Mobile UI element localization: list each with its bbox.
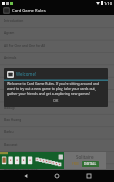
button[interactable]: Basra: [0, 151, 114, 163]
staticText: Asshole: [4, 80, 17, 84]
button[interactable]: Back: [20, 170, 32, 182]
staticText: Card Game Rules: [12, 8, 46, 14]
button[interactable]: App icon: [3, 7, 10, 14]
button[interactable]: Badugi: [0, 102, 114, 114]
button[interactable]: Home: [51, 170, 63, 182]
button[interactable]: All For One and One for All: [0, 40, 114, 52]
staticText: Baccarat: [4, 142, 18, 146]
staticText: Animals: [4, 55, 17, 59]
staticText: 1:10: [104, 1, 112, 6]
staticText: Welcome to Card Game Rules. If you're si…: [7, 81, 105, 96]
staticText: FREE: [72, 162, 79, 166]
button[interactable]: Anaconda: [0, 64, 114, 76]
staticText: Introduction: [4, 18, 24, 22]
staticText: Agram: [4, 30, 15, 34]
staticText: OK: [53, 98, 59, 103]
button[interactable]: OK: [47, 97, 65, 104]
staticText: Beggar-My-Neighbour: [4, 166, 39, 170]
staticText: Anaconda: [4, 67, 20, 71]
staticText: INSTALL: [84, 162, 97, 166]
staticText: Welcome!: [16, 71, 37, 77]
staticText: Basra: [4, 154, 13, 158]
staticText: Australian Fish: [4, 92, 27, 96]
staticText: Badugi: [4, 105, 15, 109]
staticText: Solitaire: [76, 154, 94, 160]
button[interactable]: Australian Fish: [0, 89, 114, 101]
button[interactable]: Beggar-My-Neighbour: [0, 163, 114, 175]
staticText: Barbu: [4, 129, 14, 133]
staticText: Bao Huang: [4, 117, 22, 121]
staticText: All For One and One for All: [4, 43, 46, 47]
button[interactable]: Asshole: [0, 77, 114, 89]
button[interactable]: INSTALL: [82, 161, 99, 167]
button[interactable]: Recents: [83, 170, 95, 182]
